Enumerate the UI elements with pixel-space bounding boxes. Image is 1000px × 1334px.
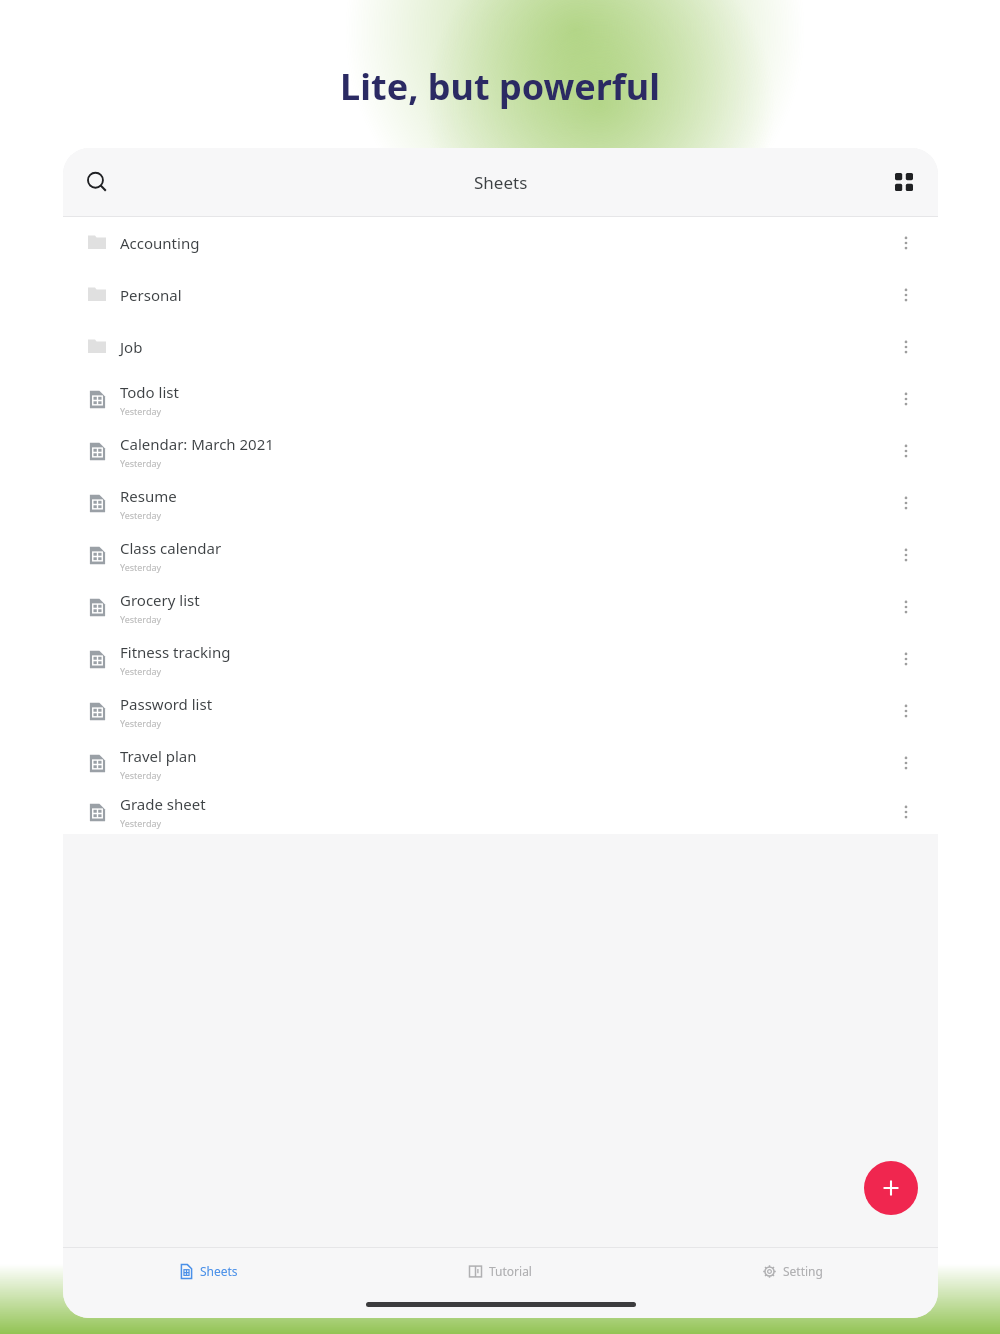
staticText: Yesterday <box>120 561 162 573</box>
staticText: Yesterday <box>120 405 162 417</box>
button[interactable]: Setting <box>646 1248 938 1294</box>
button[interactable]: Accounting <box>63 217 938 269</box>
staticText: Yesterday <box>120 717 162 729</box>
button[interactable]: Travel plan <box>63 737 938 789</box>
button[interactable]: Todo list <box>63 373 938 425</box>
staticText: Travel plan <box>120 746 197 766</box>
staticText: Yesterday <box>120 457 162 469</box>
button[interactable]: More options <box>884 221 928 265</box>
button[interactable]: Create new sheet <box>864 1161 918 1215</box>
staticText: Yesterday <box>120 613 162 625</box>
button[interactable]: More options <box>884 585 928 629</box>
button[interactable]: Resume <box>63 477 938 529</box>
staticText: Yesterday <box>120 817 162 829</box>
staticText: Grocery list <box>120 590 200 610</box>
button[interactable]: More options <box>884 273 928 317</box>
button[interactable]: More options <box>884 325 928 369</box>
button[interactable]: Tutorial <box>354 1248 646 1294</box>
button[interactable]: More options <box>884 790 928 834</box>
staticText: Tutorial <box>489 1263 532 1279</box>
button[interactable]: More options <box>884 429 928 473</box>
staticText: Calendar: March 2021 <box>120 434 274 454</box>
button[interactable]: More options <box>884 689 928 733</box>
staticText: Sheets <box>200 1263 238 1279</box>
button[interactable]: Calendar: March 2021 <box>63 425 938 477</box>
button[interactable]: Job <box>63 321 938 373</box>
staticText: Yesterday <box>120 769 162 781</box>
staticText: Class calendar <box>120 538 222 558</box>
button[interactable]: Grade sheet <box>63 789 938 834</box>
button[interactable]: Grid view <box>880 158 928 206</box>
staticText: Grade sheet <box>120 794 206 814</box>
staticText: Setting <box>783 1263 823 1279</box>
staticText: Todo list <box>120 382 179 402</box>
staticText: Sheets <box>474 171 528 194</box>
staticText: Lite, but powerful <box>0 62 1000 111</box>
button[interactable]: Class calendar <box>63 529 938 581</box>
staticText: Fitness tracking <box>120 642 231 662</box>
button[interactable]: More options <box>884 637 928 681</box>
button[interactable]: More options <box>884 741 928 785</box>
button[interactable]: More options <box>884 533 928 577</box>
button[interactable]: Grocery list <box>63 581 938 633</box>
button[interactable]: Sheets <box>63 1248 354 1294</box>
button[interactable]: Search <box>73 158 121 206</box>
staticText: Resume <box>120 486 177 506</box>
button[interactable]: More options <box>884 481 928 525</box>
staticText: Password list <box>120 694 213 714</box>
button[interactable]: Password list <box>63 685 938 737</box>
staticText: Yesterday <box>120 665 162 677</box>
staticText: Job <box>120 337 143 357</box>
button[interactable]: Fitness tracking <box>63 633 938 685</box>
button[interactable]: Personal <box>63 269 938 321</box>
staticText: Accounting <box>120 233 200 253</box>
button[interactable]: More options <box>884 377 928 421</box>
staticText: Yesterday <box>120 509 162 521</box>
staticText: Personal <box>120 285 182 305</box>
